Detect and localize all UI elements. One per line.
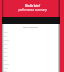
staticText: performance summary [18,8,47,12]
staticText: abc [4,67,8,70]
button[interactable]: ab [2,34,60,38]
staticText: ab [4,70,7,72]
button[interactable]: abc [2,66,60,70]
button[interactable]: ab [2,58,60,62]
staticText: daily summary [23,26,39,29]
button[interactable]: abc [2,30,60,34]
staticText: abcd [4,39,9,42]
button[interactable]: ab [2,50,60,54]
staticText: ab [4,43,7,46]
staticText: abc [4,55,8,58]
button[interactable]: daily summary [2,24,60,30]
staticText: abc [4,31,8,34]
staticText: ab [4,35,7,38]
staticText: ab [4,59,7,62]
button[interactable]: abc [2,54,60,58]
staticText: abc [4,47,8,50]
button[interactable]: ab [2,42,60,46]
button[interactable]: abcd [2,62,60,66]
button[interactable]: ab [2,70,60,72]
button[interactable]: abc [2,46,60,50]
staticText: Media brief [25,4,40,8]
button[interactable]: abcd [2,38,60,42]
staticText: abcd [4,63,9,66]
staticText: ab [4,51,7,54]
